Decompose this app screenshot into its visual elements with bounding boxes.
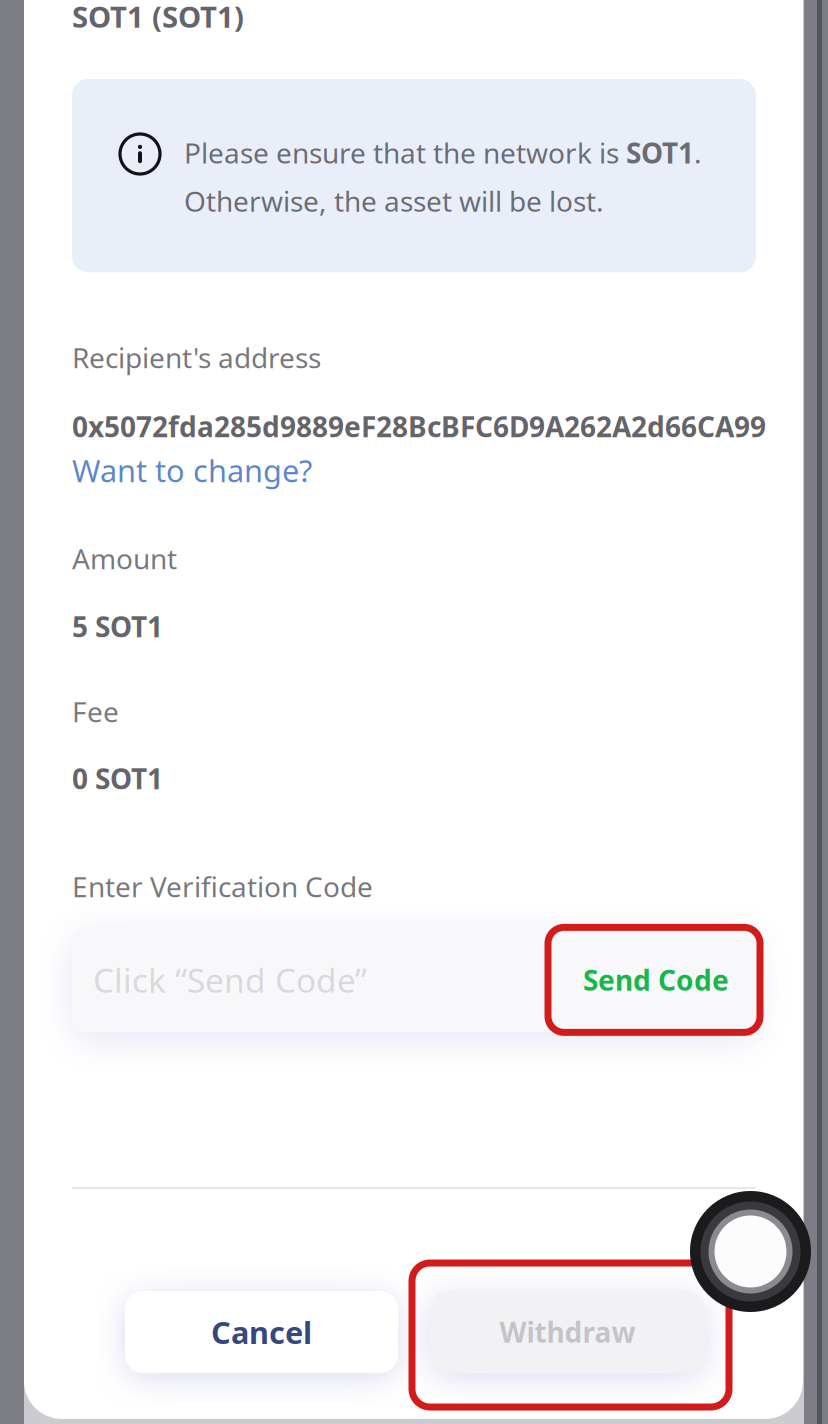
- staticText: Amount: [72, 540, 177, 577]
- button[interactable]: Send Code: [556, 927, 756, 1032]
- staticText: Cancel: [211, 1312, 312, 1352]
- staticText: Send Code: [583, 961, 729, 998]
- staticText: Want to change?: [72, 450, 312, 491]
- staticText: Click “Send Code”: [93, 958, 367, 1002]
- staticText: 5 SOT1: [72, 608, 163, 645]
- button[interactable]: Cancel: [125, 1291, 398, 1373]
- staticText: 0 SOT1: [72, 760, 163, 797]
- staticText: Withdraw: [499, 1313, 635, 1351]
- staticText: Otherwise, the asset will be lost.: [184, 182, 604, 219]
- staticText: 0x5072fda285d9889eF28BcBFC6D9A262A2d66CA…: [72, 408, 766, 445]
- staticText: Fee: [72, 693, 119, 730]
- staticText: Enter Verification Code: [72, 868, 373, 905]
- button[interactable]: Want to change?: [72, 455, 312, 485]
- staticText: SOT1 (SOT1): [72, 0, 244, 36]
- button[interactable]: Withdraw: [430, 1291, 705, 1373]
- staticText: Recipient's address: [72, 339, 321, 376]
- staticText: Please ensure that the network is SOT1.: [184, 134, 702, 171]
